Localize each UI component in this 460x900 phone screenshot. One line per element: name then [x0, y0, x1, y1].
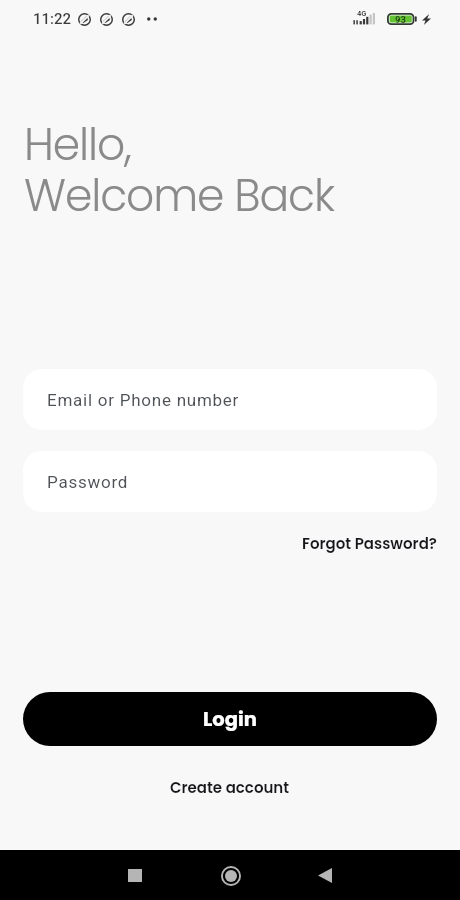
staticText: Login: [203, 706, 257, 733]
button[interactable]: Home: [208, 853, 253, 898]
staticText: 93: [395, 14, 406, 25]
button[interactable]: Password: [23, 451, 437, 512]
staticText: Hello, Welcome Back: [24, 114, 334, 226]
button[interactable]: Create account: [170, 774, 290, 801]
staticText: Password: [47, 472, 129, 492]
staticText: Email or Phone number: [47, 390, 240, 410]
button[interactable]: Recent apps: [112, 853, 157, 898]
button[interactable]: Back: [302, 853, 347, 898]
button[interactable]: Login: [23, 692, 437, 746]
staticText: 11:22: [33, 10, 72, 28]
button[interactable]: Forgot Password?: [302, 529, 437, 558]
button[interactable]: Email or Phone number: [23, 369, 437, 430]
staticText: 4G: [357, 9, 367, 18]
